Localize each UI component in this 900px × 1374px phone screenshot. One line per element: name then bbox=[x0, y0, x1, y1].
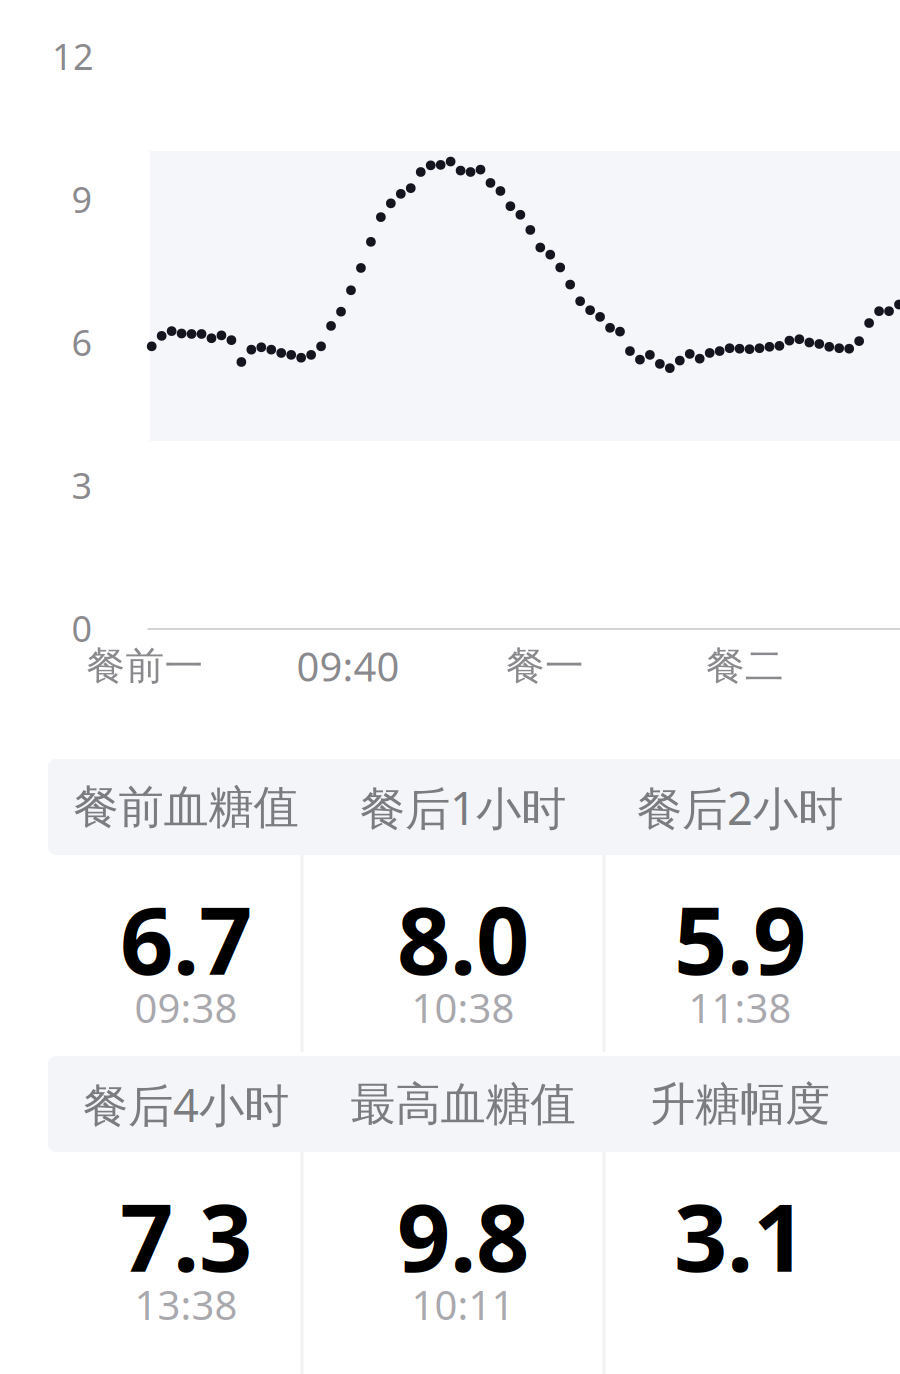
staticText: 餐前一 bbox=[86, 642, 203, 690]
staticText: 0 bbox=[71, 604, 92, 652]
staticText: 6 bbox=[71, 318, 92, 366]
staticText: 6.7 bbox=[120, 876, 252, 1000]
staticText: 3 bbox=[71, 461, 92, 509]
staticText: 10:11 bbox=[411, 1278, 514, 1331]
staticText: 餐二 bbox=[706, 642, 784, 690]
staticText: 09:38 bbox=[134, 981, 237, 1034]
staticText: 9.8 bbox=[397, 1173, 529, 1297]
staticText: 最高血糖值 bbox=[350, 1077, 575, 1132]
staticText: 餐后4小时 bbox=[83, 1074, 289, 1135]
staticText: 8.0 bbox=[397, 876, 529, 1000]
staticText: 餐前血糖值 bbox=[73, 780, 298, 835]
button[interactable]: 最高血糖值 bbox=[302, 1055, 604, 1352]
button[interactable]: 餐后1小时 bbox=[302, 758, 604, 1055]
staticText: 13:38 bbox=[134, 1278, 237, 1331]
staticText: 09:40 bbox=[296, 639, 399, 692]
button[interactable]: 餐前血糖值 bbox=[0, 758, 302, 1055]
button[interactable]: 升糖幅度 bbox=[604, 1055, 900, 1352]
staticText: 餐后2小时 bbox=[637, 777, 843, 838]
staticText: 3.1 bbox=[674, 1173, 806, 1297]
staticText: 7.3 bbox=[120, 1173, 252, 1297]
staticText: 5.9 bbox=[674, 876, 806, 1000]
staticText: 餐一 bbox=[506, 642, 584, 690]
button[interactable]: 餐后2小时 bbox=[604, 758, 900, 1055]
staticText: 9 bbox=[71, 175, 92, 223]
button[interactable]: 餐后4小时 bbox=[0, 1055, 302, 1352]
staticText: 12 bbox=[52, 32, 94, 80]
staticText: 升糖幅度 bbox=[650, 1077, 830, 1132]
staticText: 餐后1小时 bbox=[360, 777, 566, 838]
staticText: 11:38 bbox=[688, 981, 791, 1034]
staticText: 10:38 bbox=[411, 981, 514, 1034]
